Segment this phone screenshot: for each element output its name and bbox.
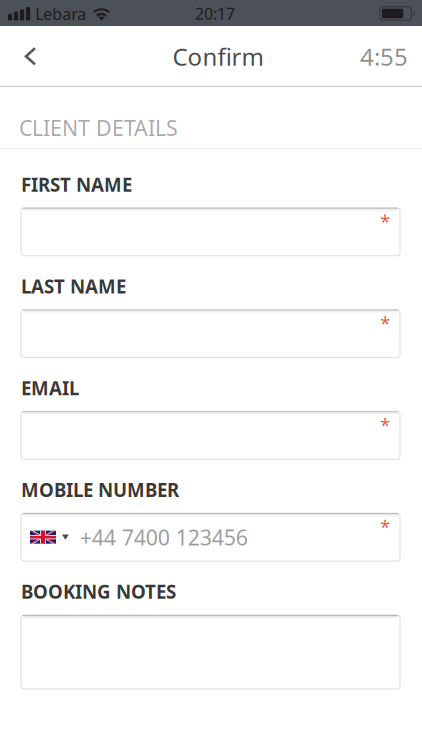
button[interactable]: Country code: United Kingdom	[21, 513, 73, 561]
staticText: EMAIL	[21, 376, 79, 400]
staticText: *	[380, 311, 390, 335]
staticText: 4:55	[360, 41, 408, 72]
staticText: FIRST NAME	[21, 172, 132, 197]
staticText: 20:17	[195, 3, 235, 24]
button[interactable]: Back	[0, 27, 61, 85]
staticText: Confirm	[172, 41, 263, 72]
staticText: BOOKING NOTES	[21, 579, 176, 604]
staticText: +44 7400 123456	[80, 523, 248, 551]
staticText: CLIENT DETAILS	[19, 114, 178, 142]
staticText: MOBILE NUMBER	[21, 477, 179, 502]
staticText: *	[380, 514, 390, 539]
staticText: *	[380, 412, 390, 437]
staticText: *	[380, 209, 390, 234]
staticText: LAST NAME	[21, 274, 126, 299]
staticText: Lebara	[35, 3, 86, 24]
